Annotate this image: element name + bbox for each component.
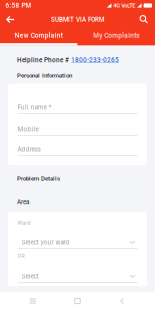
button[interactable]: Search — [134, 11, 154, 28]
button[interactable]: My Complaints — [77, 28, 155, 43]
button[interactable]: Full name * — [17, 92, 137, 114]
button[interactable]: Select your ward — [17, 231, 137, 249]
staticText: Address — [17, 146, 40, 153]
staticText: Personal Information — [17, 72, 72, 79]
staticText: Helpline Phone # — [17, 56, 71, 64]
staticText: Mobile — [17, 126, 38, 133]
staticText: SUBMIT VIA FORM — [51, 16, 104, 23]
button[interactable]: New Complaint — [0, 28, 77, 43]
staticText: Problem Details — [17, 175, 60, 182]
staticText: Ward — [17, 220, 30, 226]
button[interactable]: Back — [0, 11, 20, 28]
button[interactable]: Select — [17, 263, 137, 283]
staticText: Select your ward — [21, 239, 69, 246]
button[interactable]: 1800-233-0265 — [71, 56, 119, 64]
staticText: OR — [17, 253, 24, 259]
button[interactable]: Home — [65, 292, 89, 310]
button[interactable]: Recents — [21, 292, 45, 310]
staticText: Full name * — [17, 104, 51, 111]
staticText: 4G VoLTE — [113, 2, 135, 9]
button[interactable]: Back — [110, 292, 134, 310]
staticText: New Complaint — [15, 32, 63, 39]
button[interactable]: Address — [17, 136, 137, 156]
staticText: Select — [21, 273, 38, 280]
button[interactable]: Mobile — [17, 114, 137, 136]
staticText: 6:58 PM — [5, 2, 31, 9]
staticText: Area — [17, 198, 29, 206]
staticText: My Complaints — [93, 32, 139, 39]
staticText: 1800-233-0265 — [71, 56, 119, 64]
